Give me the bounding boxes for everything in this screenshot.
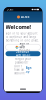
button[interactable]: Continue with Email [5,51,40,56]
staticText: ACME [21,15,29,19]
staticText: Sign in with Google [19,42,30,52]
button[interactable]: Don't have an account? [5,68,40,71]
staticText: Continue with Email [15,50,30,57]
button[interactable]: Sign in with Google [5,44,40,50]
staticText: Don't have an account? [14,64,25,75]
staticText: 9:41 [7,8,14,11]
button[interactable]: Forgot your password? [5,59,40,62]
staticText: Sign up [26,66,32,73]
staticText: Welcome! [5,23,31,31]
staticText: Sign in to your account to continue and … [5,32,39,42]
staticText: Forgot your password? [15,57,31,64]
